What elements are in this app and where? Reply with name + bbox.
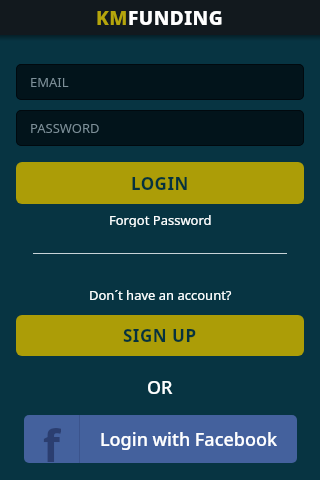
button[interactable]: PASSWORD: [16, 110, 304, 146]
button[interactable]: f: [24, 415, 297, 463]
staticText: PASSWORD: [30, 119, 100, 137]
staticText: KMFUNDING: [96, 5, 224, 31]
button[interactable]: EMAIL: [16, 64, 304, 100]
staticText: Forgot Password: [109, 211, 212, 227]
staticText: Login with Facebook: [100, 427, 278, 452]
staticText: f: [43, 415, 61, 463]
button[interactable]: SIGN UP: [16, 315, 304, 356]
button[interactable]: LOGIN: [16, 162, 304, 204]
staticText: OR: [147, 375, 173, 397]
staticText: LOGIN: [131, 172, 189, 195]
staticText: EMAIL: [30, 73, 69, 91]
staticText: SIGN UP: [123, 324, 197, 347]
button[interactable]: Forgot Password: [0, 211, 320, 227]
staticText: Don´t have an account?: [89, 286, 232, 302]
